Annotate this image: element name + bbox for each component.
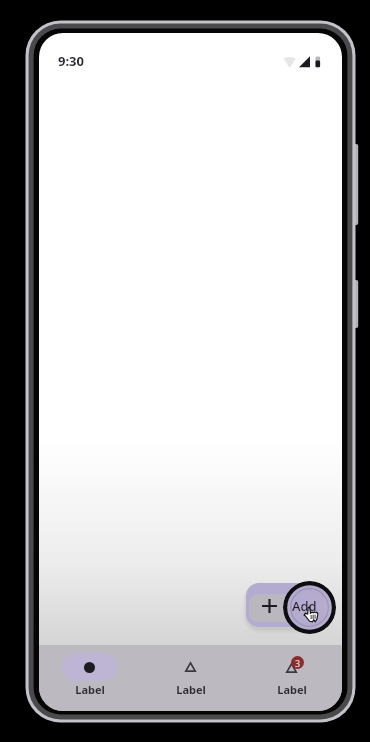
staticText: Add [292, 597, 317, 615]
staticText: Add [292, 597, 317, 615]
staticText: 9:30 [58, 52, 84, 70]
button[interactable]: 3 [241, 645, 342, 711]
button[interactable]: Add [283, 581, 336, 634]
button[interactable]: Label [39, 645, 140, 711]
staticText: Label [176, 682, 206, 697]
staticText: Label [75, 682, 105, 697]
staticText: 3 [295, 657, 301, 669]
button[interactable]: Label [140, 645, 241, 711]
button[interactable]: Add [246, 583, 324, 627]
staticText: Label [277, 682, 307, 697]
